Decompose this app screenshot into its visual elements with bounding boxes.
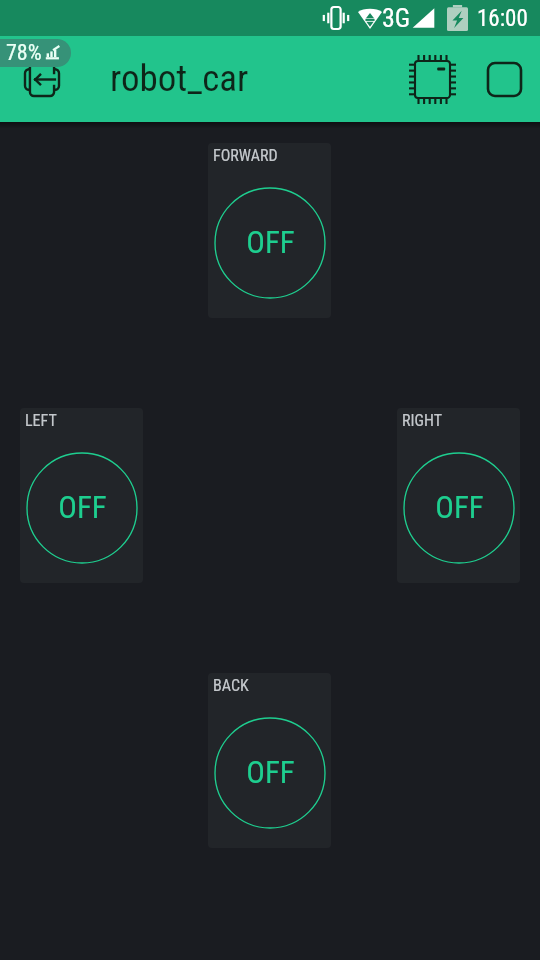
staticText: RIGHT <box>402 411 442 430</box>
staticText: BACK <box>213 676 249 695</box>
button[interactable]: RIGHT <box>397 408 520 583</box>
button[interactable]: Stop <box>472 47 536 111</box>
button[interactable]: BACK <box>208 673 331 848</box>
staticText: OFF <box>246 754 295 790</box>
button[interactable]: Device chip <box>400 47 464 111</box>
staticText: 78% <box>6 40 42 66</box>
staticText: 16:00 <box>477 5 528 32</box>
staticText: robot_car <box>110 57 249 100</box>
staticText: OFF <box>246 224 295 260</box>
staticText: OFF <box>58 489 107 525</box>
button[interactable]: Back <box>8 45 76 113</box>
button[interactable]: LEFT <box>20 408 143 583</box>
staticText: LEFT <box>25 411 57 430</box>
button[interactable]: FORWARD <box>208 143 331 318</box>
staticText: OFF <box>435 489 484 525</box>
staticText: FORWARD <box>213 146 278 165</box>
staticText: 3G <box>382 3 411 33</box>
